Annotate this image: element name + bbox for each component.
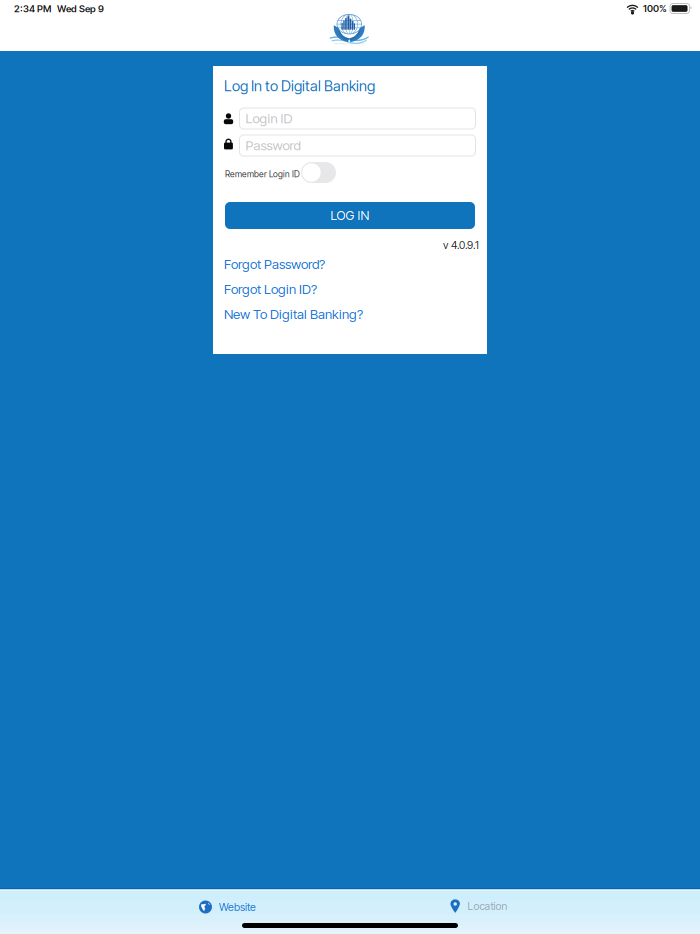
button[interactable]: Forgot Login ID? bbox=[224, 281, 317, 297]
button[interactable]: Location bbox=[350, 888, 700, 924]
button[interactable]: Password bbox=[239, 135, 475, 156]
staticText: 2:34 PM bbox=[14, 3, 51, 15]
staticText: Forgot Login ID? bbox=[224, 281, 317, 297]
staticText: LOG IN bbox=[330, 208, 369, 223]
button[interactable]: LOG IN bbox=[225, 202, 475, 229]
staticText: Forgot Password? bbox=[224, 256, 325, 272]
staticText: New To Digital Banking? bbox=[224, 306, 363, 322]
button[interactable]: Website bbox=[0, 889, 549, 925]
button[interactable]: Forgot Password? bbox=[224, 256, 325, 272]
staticText: Log In to Digital Banking bbox=[224, 77, 375, 95]
staticText: Password bbox=[245, 137, 300, 153]
staticText: v 4.0.9.1 bbox=[443, 238, 479, 251]
staticText: Wed Sep 9 bbox=[57, 3, 104, 15]
button[interactable]: Login ID bbox=[239, 108, 475, 129]
staticText: 100% bbox=[643, 3, 667, 14]
button[interactable]: New To Digital Banking? bbox=[224, 306, 363, 322]
staticText: Remember Login ID bbox=[225, 169, 300, 179]
staticText: Location bbox=[467, 899, 507, 912]
staticText: Website bbox=[219, 900, 256, 913]
staticText: NATIONAL CREDIT UNION bbox=[332, 44, 366, 47]
button[interactable]: Remember Login ID bbox=[301, 162, 336, 183]
staticText: Login ID bbox=[245, 110, 292, 126]
